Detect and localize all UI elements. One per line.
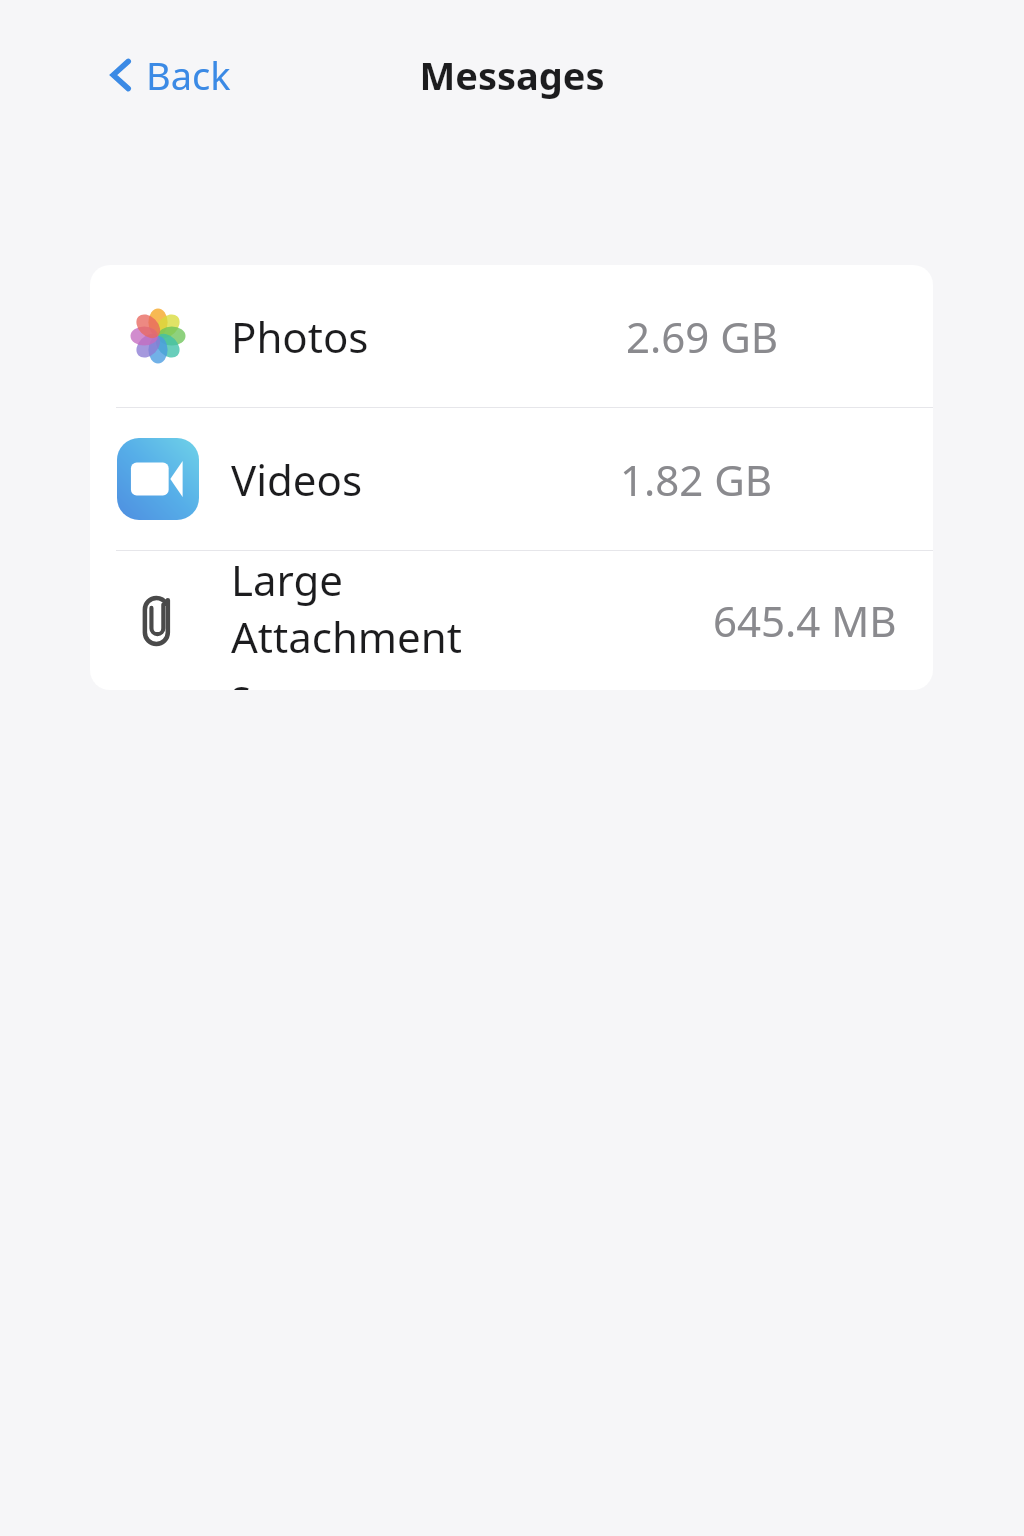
staticText: Large Attachments [231,551,472,690]
staticText: Videos [231,451,363,508]
staticText: Photos [231,308,369,365]
other: Large Attachments [117,580,199,662]
staticText: 645.4 MB [713,592,897,649]
button[interactable]: Photos [90,265,933,407]
other: Photos [117,295,199,377]
staticText: 2.69 GB [626,308,779,365]
staticText: 1.82 GB [620,451,773,508]
staticText: Messages [419,49,605,101]
button[interactable]: Large Attachments [90,551,933,690]
other: Videos [117,438,199,520]
button[interactable]: Back [100,43,239,107]
button[interactable]: Videos [90,408,933,550]
staticText: Back [146,49,231,101]
